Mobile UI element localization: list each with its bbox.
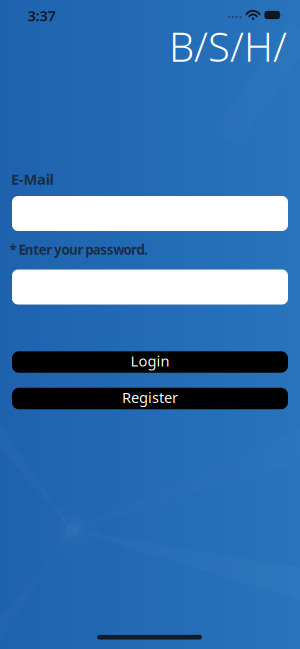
button[interactable]: Login xyxy=(12,351,288,373)
button[interactable] xyxy=(12,269,288,304)
button[interactable]: Register xyxy=(12,388,288,409)
staticText: * Enter your password. xyxy=(9,241,148,258)
staticText: 3:37 xyxy=(27,6,55,25)
staticText: B/S/H/ xyxy=(169,20,287,73)
staticText: Login xyxy=(130,351,169,370)
staticText: Register xyxy=(122,387,178,407)
button[interactable] xyxy=(12,196,288,231)
staticText: E-Mail xyxy=(11,169,53,189)
